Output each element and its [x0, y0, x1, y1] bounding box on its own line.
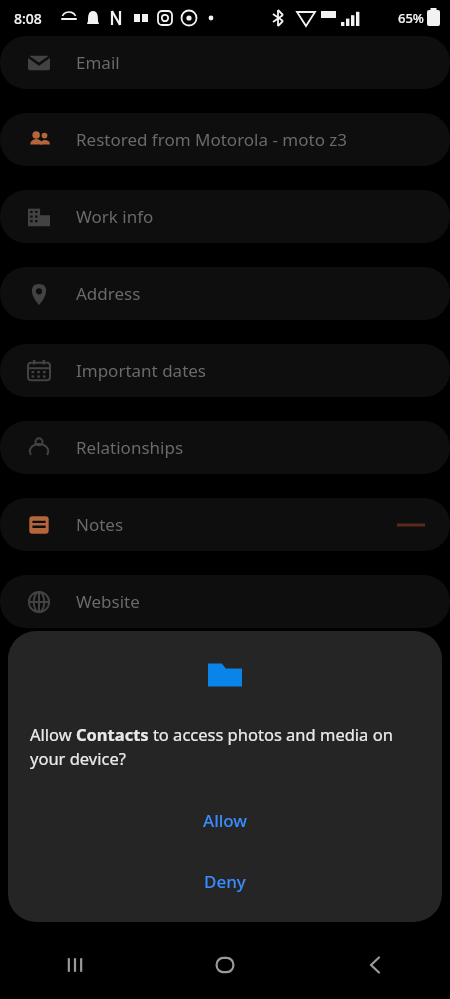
staticText: Address [76, 282, 141, 305]
staticText: Allow [203, 809, 248, 832]
staticText: Email [76, 51, 120, 74]
button[interactable]: Relationships [0, 421, 450, 474]
staticText: Allow Contacts to access photos and medi… [30, 723, 420, 770]
staticText: 8:08 [14, 9, 42, 28]
staticText: Important dates [76, 359, 207, 382]
staticText: Notes [76, 513, 124, 536]
button[interactable]: Work info [0, 190, 450, 243]
staticText: Relationships [76, 436, 184, 459]
button[interactable]: Email [0, 36, 450, 89]
button[interactable]: Deny [8, 855, 442, 907]
button[interactable]: Allow [8, 794, 442, 846]
button[interactable]: Notes [0, 498, 450, 551]
button[interactable]: Address [0, 267, 450, 320]
staticText: Deny [204, 870, 246, 893]
button[interactable]: Important dates [0, 344, 450, 397]
button[interactable]: Back [300, 930, 450, 999]
button[interactable]: Restored from Motorola - moto z3 [0, 113, 450, 166]
staticText: Restored from Motorola - moto z3 [76, 128, 348, 151]
button[interactable]: Home [150, 930, 300, 999]
button[interactable]: Website [0, 575, 450, 628]
staticText: 65% [398, 9, 424, 27]
staticText: Work info [76, 205, 154, 228]
staticText: Website [76, 590, 140, 613]
button[interactable]: Recent apps [0, 930, 150, 999]
